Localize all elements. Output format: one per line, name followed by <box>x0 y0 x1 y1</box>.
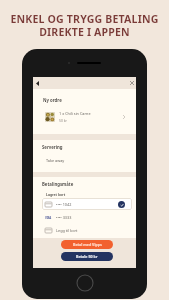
staticText: Betale 50 kr <box>76 254 98 259</box>
button[interactable]: Close <box>126 77 138 89</box>
staticText: •••• 1042 <box>56 202 72 207</box>
button[interactable]: Take away <box>33 153 136 169</box>
button[interactable]: Legg til kort <box>45 224 125 236</box>
staticText: Betal med Vipps <box>73 242 102 247</box>
button[interactable]: •••• 1042 <box>45 198 125 210</box>
staticText: Ny ordre <box>43 97 62 103</box>
staticText: Legg til kort <box>56 228 78 233</box>
button[interactable]: 1 x Chili sin Carne <box>45 110 125 123</box>
button[interactable]: VISA <box>45 211 125 223</box>
staticText: 50 kr <box>59 118 67 123</box>
staticText: Lagret kort <box>46 192 66 197</box>
staticText: ENKEL OG TRYGG BETALING DIREKTE I APPEN <box>0 12 169 39</box>
button[interactable]: Betale 50 kr <box>61 252 113 261</box>
staticText: •••• 3333 <box>56 215 72 220</box>
staticText: VISA <box>45 216 52 220</box>
staticText: Servering <box>42 144 63 150</box>
button[interactable]: Betal med Vipps <box>61 240 113 249</box>
staticText: 1 x Chili sin Carne <box>59 111 91 116</box>
button[interactable]: Back <box>31 77 43 89</box>
staticText: Take away <box>46 158 65 163</box>
staticText: Betalingsmåte <box>42 181 74 187</box>
